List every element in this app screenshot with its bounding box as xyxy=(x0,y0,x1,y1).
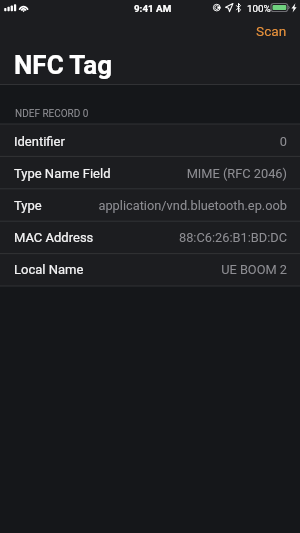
button[interactable]: Local Name xyxy=(0,252,300,284)
staticText: NFC Tag xyxy=(14,50,113,80)
button[interactable]: Identifier xyxy=(0,124,300,156)
button[interactable]: Type xyxy=(0,188,300,220)
staticText: Type Name Field xyxy=(14,166,111,181)
staticText: 0 xyxy=(279,134,287,149)
staticText: Identifier xyxy=(14,134,65,149)
staticText: 100% xyxy=(247,3,271,14)
staticText: Type xyxy=(14,198,42,213)
staticText: MAC Address xyxy=(14,230,94,245)
button[interactable]: MAC Address xyxy=(0,220,300,252)
staticText: 88:C6:26:B1:BD:DC xyxy=(178,230,287,245)
staticText: MIME (RFC 2046) xyxy=(186,166,287,181)
staticText: Local Name xyxy=(14,262,84,277)
staticText: UE BOOM 2 xyxy=(221,262,287,277)
staticText: Scan xyxy=(256,23,287,39)
staticText: NDEF RECORD 0 xyxy=(15,108,89,120)
staticText: application/vnd.bluetooth.ep.oob xyxy=(98,198,287,213)
button[interactable]: Type Name Field xyxy=(0,156,300,188)
staticText: 9:41 AM xyxy=(134,3,172,14)
button[interactable]: Scan xyxy=(251,20,292,42)
